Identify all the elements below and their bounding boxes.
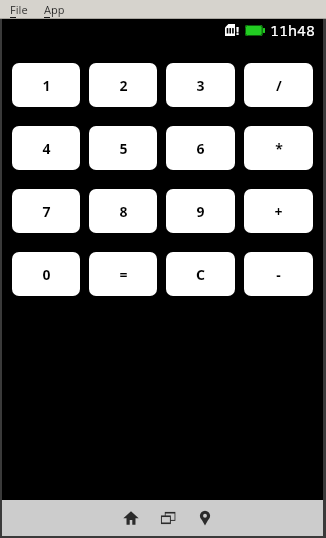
staticText: = <box>119 265 128 284</box>
button[interactable]: 9 <box>166 189 235 233</box>
button[interactable]: - <box>244 252 313 296</box>
staticText: * <box>275 139 283 158</box>
staticText: 7 <box>42 202 51 221</box>
button[interactable]: App <box>44 2 65 18</box>
button[interactable]: 1 <box>12 63 80 107</box>
button[interactable]: 5 <box>89 126 157 170</box>
button[interactable]: 2 <box>89 63 157 107</box>
button[interactable]: 0 <box>12 252 80 296</box>
staticText: - <box>276 265 281 284</box>
button[interactable]: 6 <box>166 126 235 170</box>
staticText: 5 <box>119 139 128 158</box>
staticText: App <box>44 2 65 17</box>
button[interactable]: 3 <box>166 63 235 107</box>
button[interactable]: File <box>10 2 28 18</box>
button[interactable]: 8 <box>89 189 157 233</box>
staticText: / <box>276 76 282 95</box>
staticText: 11h48 <box>270 20 316 40</box>
button[interactable]: = <box>89 252 157 296</box>
button[interactable]: Location <box>193 506 217 530</box>
staticText: 1 <box>42 76 51 95</box>
button[interactable]: 4 <box>12 126 80 170</box>
staticText: 6 <box>196 139 205 158</box>
staticText: 0 <box>42 265 51 284</box>
button[interactable]: Home <box>119 506 143 530</box>
staticText: 2 <box>119 76 128 95</box>
staticText: + <box>274 202 283 221</box>
button[interactable]: 7 <box>12 189 80 233</box>
staticText: 8 <box>119 202 128 221</box>
staticText: File <box>10 2 28 17</box>
button[interactable]: Recent apps <box>156 506 180 530</box>
staticText: ! <box>236 23 240 38</box>
staticText: 9 <box>196 202 205 221</box>
staticText: 3 <box>196 76 205 95</box>
button[interactable]: * <box>244 126 313 170</box>
button[interactable]: / <box>244 63 313 107</box>
staticText: C <box>196 265 205 284</box>
staticText: 4 <box>42 139 51 158</box>
button[interactable]: C <box>166 252 235 296</box>
button[interactable]: + <box>244 189 313 233</box>
